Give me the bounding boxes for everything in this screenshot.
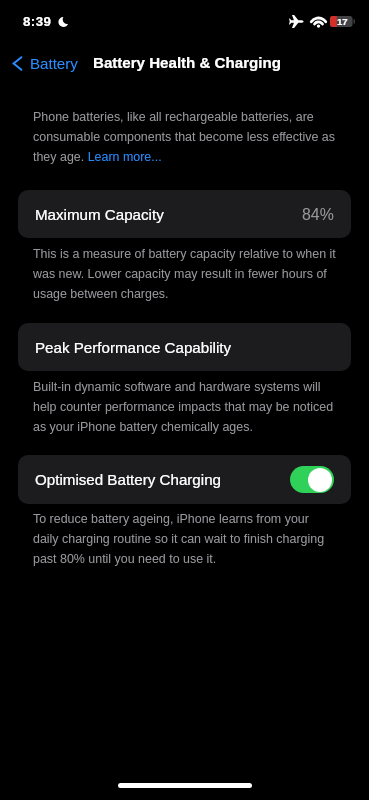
- staticText: 17: [337, 16, 348, 27]
- staticText: Maximum Capacity: [35, 206, 164, 223]
- staticText: Peak Performance Capability: [35, 339, 232, 356]
- staticText: Optimised Battery Charging: [35, 471, 221, 488]
- staticText: To reduce battery ageing, iPhone learns …: [33, 507, 337, 567]
- other: Do Not Disturb: [60, 17, 69, 27]
- other: Battery 17 percent: [330, 16, 354, 27]
- button[interactable]: Optimised Battery Charging: [18, 455, 351, 504]
- staticText: 84%: [302, 206, 334, 224]
- staticText: Phone batteries, like all rechargeable b…: [33, 105, 337, 165]
- button[interactable]: Phone batteries, like all rechargeable b…: [33, 105, 337, 165]
- other: Wi-Fi connected: [311, 16, 326, 27]
- staticText: Battery: [30, 55, 78, 72]
- button[interactable]: Maximum Capacity: [18, 190, 351, 238]
- staticText: This is a measure of battery capacity re…: [33, 242, 337, 302]
- other: Aeroplane mode on: [289, 15, 304, 28]
- staticText: Battery Health & Charging: [93, 54, 281, 71]
- staticText: 8:39: [23, 14, 52, 29]
- button[interactable]: Battery: [8, 52, 81, 75]
- button[interactable]: Optimised Battery Charging, on: [290, 466, 334, 493]
- button[interactable]: Peak Performance Capability: [18, 323, 351, 371]
- staticText: Built-in dynamic software and hardware s…: [33, 375, 337, 435]
